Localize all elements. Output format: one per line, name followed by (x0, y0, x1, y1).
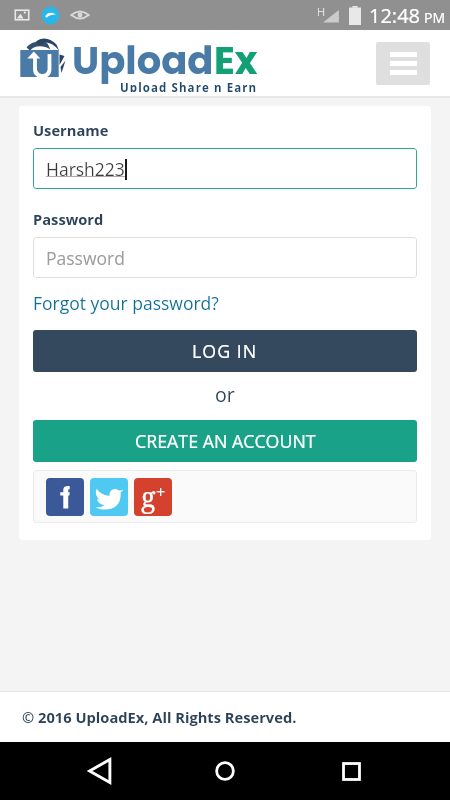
button[interactable]: Harsh223 (33, 148, 417, 189)
staticText: H (317, 4, 326, 19)
button[interactable]: Facebook (46, 478, 84, 516)
staticText: Username (33, 120, 109, 140)
staticText: CREATE AN ACCOUNT (135, 429, 316, 453)
button[interactable]: LOG IN (33, 330, 417, 372)
button[interactable]: CREATE AN ACCOUNT (33, 420, 417, 462)
staticText: Harsh223 (46, 157, 125, 181)
staticText: + (156, 481, 166, 503)
staticText: Forgot your password? (33, 291, 219, 315)
button[interactable]: Forgot your password? (33, 291, 219, 315)
button[interactable]: Back (74, 745, 126, 797)
button[interactable]: Google Plus (134, 478, 172, 516)
staticText: 12:48 (369, 2, 420, 29)
staticText: LOG IN (192, 339, 258, 363)
staticText: g (141, 478, 156, 515)
staticText: Upload (72, 34, 214, 88)
staticText: Password (33, 209, 104, 229)
button[interactable]: Password (33, 237, 417, 278)
staticText: PM (424, 8, 446, 27)
staticText: © 2016 UploadEx, All Rights Reserved. (22, 707, 297, 727)
button[interactable]: Home (199, 745, 251, 797)
staticText: Ex (214, 34, 258, 88)
staticText: or (215, 381, 235, 408)
staticText: Upload Share n Earn (120, 80, 258, 92)
staticText: Password (46, 246, 125, 270)
button[interactable]: Recents (325, 745, 377, 797)
button[interactable]: Menu (376, 42, 430, 85)
button[interactable]: Twitter (90, 478, 128, 516)
